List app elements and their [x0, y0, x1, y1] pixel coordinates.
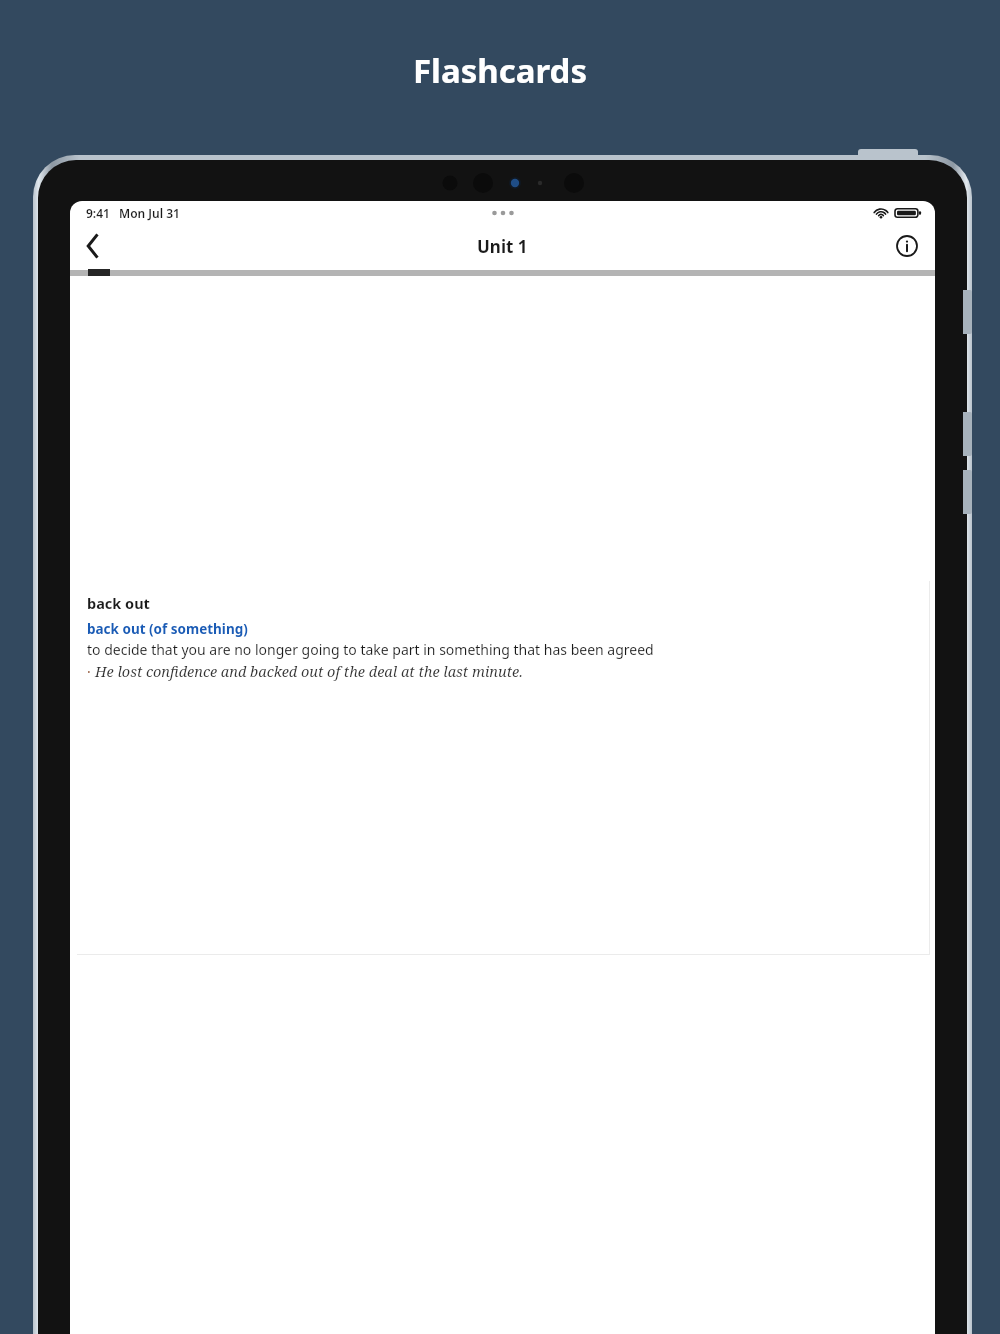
staticText: to decide that you are no longer going t… [87, 640, 654, 659]
staticText: He lost confidence and backed out of the… [95, 661, 523, 681]
button[interactable]: Back [70, 224, 116, 268]
staticText: Flashcards [413, 48, 588, 93]
staticText: · [87, 662, 95, 681]
staticText: 9:41 [86, 205, 110, 221]
staticText: Mon Jul 31 [119, 205, 180, 221]
staticText: Unit 1 [477, 235, 528, 258]
staticText: back out (of something) [87, 620, 248, 638]
button[interactable]: back out [76, 580, 929, 954]
staticText: back out [87, 593, 150, 613]
button[interactable]: Information [887, 226, 927, 266]
